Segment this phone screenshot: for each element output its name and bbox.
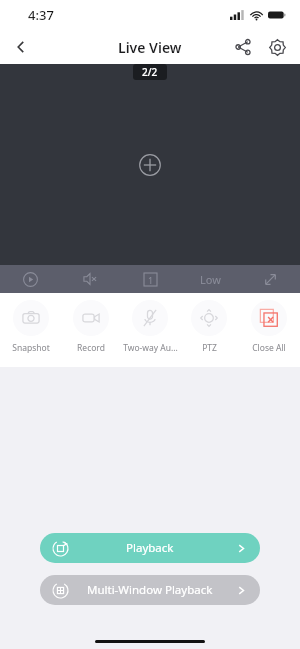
button[interactable]: Share xyxy=(228,32,258,62)
staticText: Snapshot xyxy=(12,342,50,354)
button[interactable]: Close All xyxy=(241,293,297,354)
staticText: Record xyxy=(77,342,105,354)
button[interactable]: Settings xyxy=(262,32,292,62)
button[interactable]: Low xyxy=(180,265,240,293)
button[interactable]: Multi-Window Playback xyxy=(40,575,260,605)
button[interactable]: Record xyxy=(63,293,119,354)
staticText: Low xyxy=(200,272,221,287)
button[interactable]: Snapshot xyxy=(3,293,59,354)
button[interactable]: Play xyxy=(0,265,60,293)
button[interactable]: PTZ xyxy=(181,293,237,354)
button[interactable]: Playback xyxy=(40,533,260,563)
button[interactable]: Back xyxy=(4,30,38,64)
staticText: Multi-Window Playback xyxy=(87,582,213,598)
staticText: PTZ xyxy=(202,342,217,354)
button[interactable]: Mute xyxy=(60,265,120,293)
staticText: Playback xyxy=(126,540,174,556)
staticText: Close All xyxy=(252,342,286,354)
staticText: 2/2 xyxy=(142,65,158,79)
staticText: 1 xyxy=(148,274,154,286)
button[interactable]: Fullscreen xyxy=(240,265,300,293)
button[interactable]: Two-way Au... xyxy=(122,293,178,354)
staticText: Two-way Au... xyxy=(123,342,178,354)
staticText: 4:37 xyxy=(28,6,54,24)
button[interactable]: Layout xyxy=(120,265,180,293)
button[interactable]: Add camera xyxy=(128,143,172,187)
staticText: Live View xyxy=(118,38,182,57)
